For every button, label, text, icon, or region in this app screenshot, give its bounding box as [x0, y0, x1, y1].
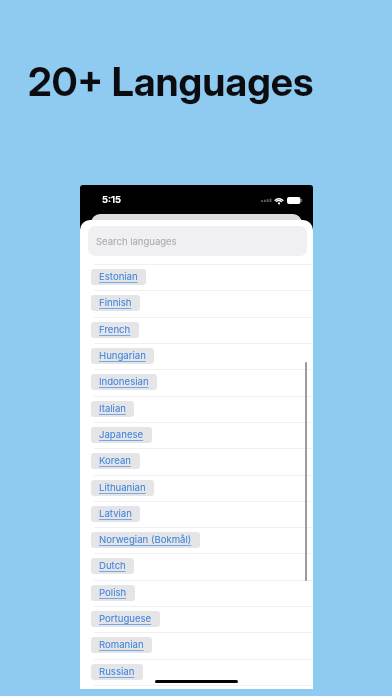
button[interactable]: Portuguese — [80, 606, 313, 632]
staticText: Estonian — [99, 271, 138, 283]
staticText: Portuguese — [99, 613, 152, 625]
staticText: Search languages — [96, 236, 177, 247]
button[interactable]: Norwegian (Bokmål) — [80, 527, 313, 553]
button[interactable]: Korean — [80, 448, 313, 474]
button[interactable]: Russian — [80, 659, 313, 685]
button[interactable]: Hungarian — [80, 343, 313, 369]
button[interactable]: Latvian — [80, 501, 313, 527]
button[interactable]: Lithuanian — [80, 475, 313, 501]
button[interactable]: Estonian — [80, 264, 313, 290]
button[interactable]: Dutch — [80, 553, 313, 579]
other: Battery — [287, 197, 303, 204]
staticText: Norwegian (Bokmål) — [99, 534, 192, 546]
button[interactable]: Finnish — [80, 290, 313, 316]
other: Wi-Fi — [274, 197, 284, 204]
staticText: French — [99, 324, 131, 336]
staticText: Indonesian — [99, 376, 149, 388]
button[interactable]: Romanian — [80, 632, 313, 658]
staticText: 20+ Languages — [28, 58, 314, 106]
button[interactable]: Search languages — [88, 226, 307, 256]
staticText: Lithuanian — [99, 482, 146, 494]
staticText: Dutch — [99, 560, 126, 572]
staticText: Hungarian — [99, 350, 146, 362]
button[interactable]: Italian — [80, 396, 313, 422]
staticText: Finnish — [99, 297, 132, 309]
staticText: 5:15 — [102, 194, 121, 205]
button[interactable]: Slovak — [80, 685, 313, 689]
button[interactable]: French — [80, 317, 313, 343]
staticText: Korean — [99, 455, 132, 467]
button[interactable]: Japanese — [80, 422, 313, 448]
staticText: Italian — [99, 403, 126, 415]
staticText: Japanese — [99, 429, 144, 441]
staticText: Romanian — [99, 639, 144, 651]
button[interactable]: Indonesian — [80, 369, 313, 395]
staticText: Russian — [99, 666, 135, 678]
other: Cellular signal — [261, 198, 272, 202]
button[interactable]: Polish — [80, 580, 313, 606]
staticText: Latvian — [99, 508, 132, 520]
staticText: Polish — [99, 587, 127, 599]
